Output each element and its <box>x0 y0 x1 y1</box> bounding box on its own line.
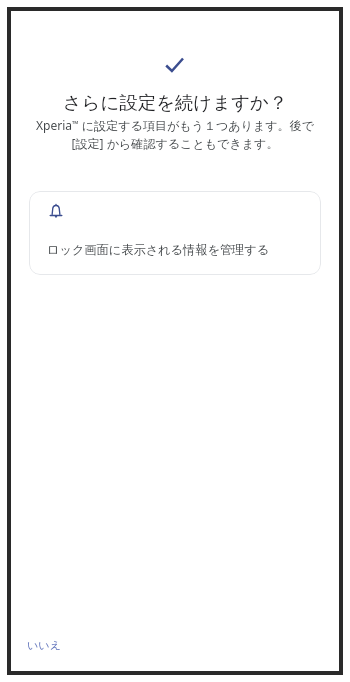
button[interactable]: いいえ <box>15 630 74 660</box>
other: 通知 <box>49 203 65 221</box>
staticText: Xperia™ に設定する項目がもう１つあります。後で [設定] から確認するこ… <box>0 117 350 152</box>
staticText: ロック画面に表示される情報を管理する <box>47 242 270 257</box>
staticText: さらに設定を続けますか？ <box>0 91 350 114</box>
staticText: いいえ <box>27 638 62 652</box>
button[interactable]: 通知 <box>29 191 321 275</box>
